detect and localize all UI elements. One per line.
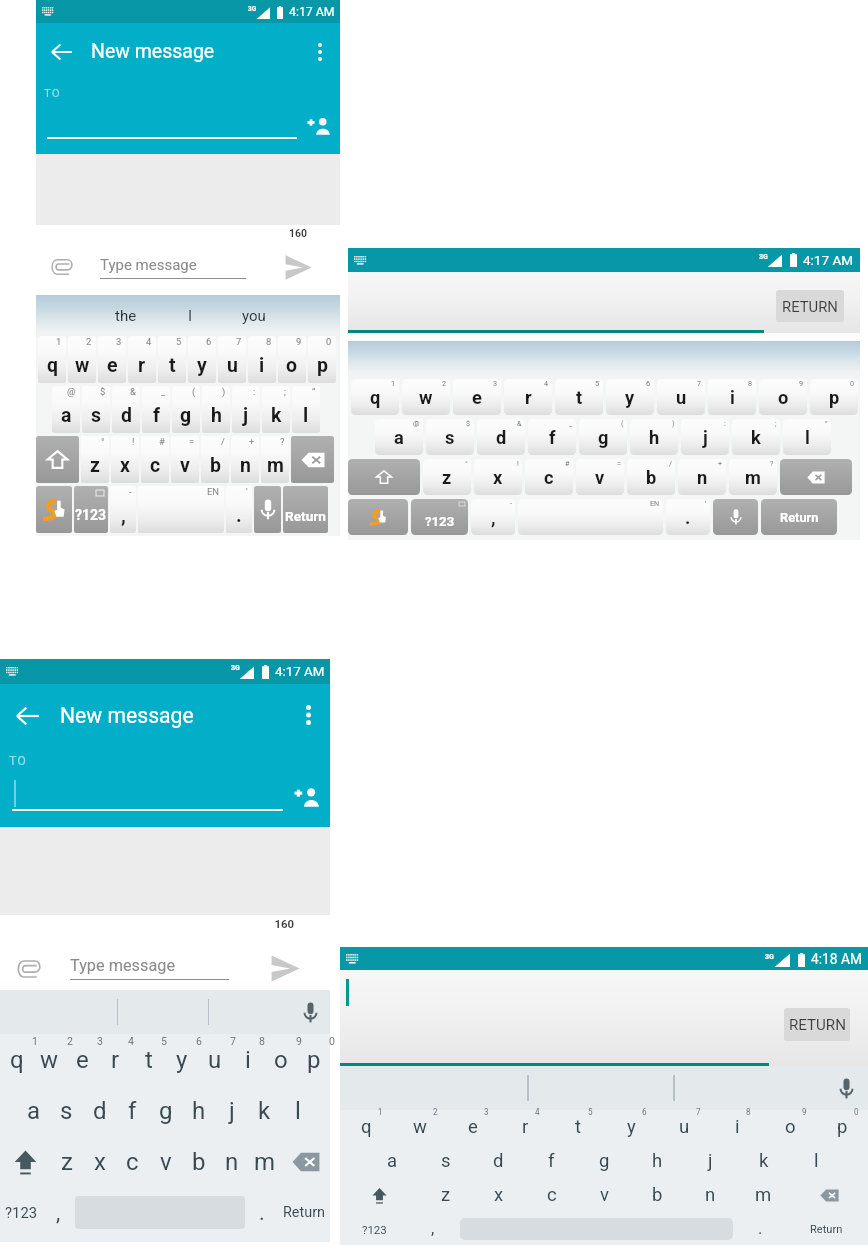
- button[interactable]: (: [172, 386, 200, 433]
- button[interactable]: y: [165, 1034, 198, 1085]
- button[interactable]: j: [684, 1144, 737, 1178]
- button[interactable]: ”: [783, 419, 831, 455]
- button[interactable]: .: [736, 1212, 784, 1245]
- button[interactable]: 2: [402, 379, 450, 415]
- button[interactable]: Voice input: [829, 1071, 863, 1105]
- button[interactable]: 2: [68, 336, 96, 383]
- button[interactable]: p: [817, 1110, 868, 1144]
- button[interactable]: w: [33, 1034, 66, 1085]
- button[interactable]: f: [116, 1085, 149, 1136]
- button[interactable]: a: [17, 1085, 50, 1136]
- button[interactable]: l: [281, 1085, 314, 1136]
- button[interactable]: g: [149, 1085, 182, 1136]
- button[interactable]: u: [658, 1110, 711, 1144]
- button[interactable]: .: [247, 1187, 277, 1238]
- button[interactable]: Voice input: [293, 995, 327, 1029]
- button[interactable]: EN: [518, 499, 663, 535]
- button[interactable]: ?123: [0, 1187, 43, 1238]
- button[interactable]: ,: [409, 1212, 457, 1245]
- button[interactable]: 1: [38, 336, 66, 383]
- button[interactable]: t: [552, 1110, 605, 1144]
- button[interactable]: $: [426, 419, 474, 455]
- button[interactable]: :: [232, 386, 260, 433]
- button[interactable]: 6: [188, 336, 216, 383]
- button[interactable]: Add contact: [291, 781, 321, 811]
- button[interactable]: +: [678, 459, 726, 495]
- button[interactable]: x: [83, 1136, 116, 1187]
- button[interactable]: ?: [261, 436, 289, 483]
- button[interactable]: ): [202, 386, 230, 433]
- button[interactable]: c: [525, 1178, 578, 1212]
- button[interactable]: s: [419, 1144, 472, 1178]
- button[interactable]: 8: [708, 379, 756, 415]
- button[interactable]: n: [215, 1136, 248, 1187]
- button[interactable]: (: [579, 419, 627, 455]
- button[interactable]: Backspace: [291, 436, 334, 483]
- button[interactable]: 5: [158, 336, 186, 383]
- button[interactable]: you: [222, 295, 286, 336]
- button[interactable]: 8: [248, 336, 276, 383]
- button[interactable]: m: [248, 1136, 281, 1187]
- button[interactable]: Swipe input: [348, 499, 408, 535]
- button[interactable]: v: [149, 1136, 182, 1187]
- button[interactable]: 1: [351, 379, 399, 415]
- button[interactable]: ”: [292, 386, 320, 433]
- button[interactable]: #: [141, 436, 169, 483]
- button[interactable]: 5: [555, 379, 603, 415]
- button[interactable]: RETURN: [784, 1008, 850, 1041]
- button[interactable]: t: [132, 1034, 165, 1085]
- button[interactable]: b: [631, 1178, 684, 1212]
- button[interactable]: ;: [262, 386, 290, 433]
- button[interactable]: Return: [761, 499, 837, 535]
- button[interactable]: ,: [43, 1187, 73, 1238]
- button[interactable]: e: [66, 1034, 99, 1085]
- button[interactable]: 3: [453, 379, 501, 415]
- button[interactable]: ?123: [411, 499, 468, 535]
- button[interactable]: _: [528, 419, 576, 455]
- button[interactable]: Shift: [0, 1136, 50, 1187]
- button[interactable]: Shift: [348, 459, 420, 495]
- button[interactable]: More options: [293, 700, 323, 730]
- button[interactable]: i: [231, 1034, 264, 1085]
- button[interactable]: g: [578, 1144, 631, 1178]
- button[interactable]: 7: [657, 379, 705, 415]
- button[interactable]: x: [472, 1178, 525, 1212]
- button[interactable]: !: [474, 459, 522, 495]
- button[interactable]: ?: [729, 459, 777, 495]
- button[interactable]: u: [198, 1034, 231, 1085]
- button[interactable]: ': [226, 486, 252, 533]
- button[interactable]: Voice input: [713, 499, 758, 535]
- button[interactable]: 0: [308, 336, 336, 383]
- button[interactable]: 3: [98, 336, 126, 383]
- button[interactable]: -: [110, 486, 136, 533]
- button[interactable]: 9: [759, 379, 807, 415]
- button[interactable]: h: [182, 1085, 215, 1136]
- button[interactable]: c: [116, 1136, 149, 1187]
- button[interactable]: Attach: [46, 251, 78, 283]
- button[interactable]: f: [525, 1144, 578, 1178]
- button[interactable]: Attach: [11, 951, 46, 986]
- button[interactable]: a: [366, 1144, 419, 1178]
- button[interactable]: -: [471, 499, 515, 535]
- button[interactable]: k: [248, 1085, 281, 1136]
- button[interactable]: 4: [504, 379, 552, 415]
- button[interactable]: _: [142, 386, 170, 433]
- button[interactable]: Return: [277, 1187, 330, 1238]
- button[interactable]: &: [112, 386, 140, 433]
- button[interactable]: Back: [45, 36, 77, 68]
- button[interactable]: Backspace: [790, 1178, 868, 1212]
- button[interactable]: m: [737, 1178, 790, 1212]
- button[interactable]: e: [446, 1110, 499, 1144]
- button[interactable]: Backspace: [780, 459, 852, 495]
- button[interactable]: $: [82, 386, 110, 433]
- button[interactable]: Swipe input: [36, 486, 72, 533]
- button[interactable]: &: [477, 419, 525, 455]
- button[interactable]: z: [50, 1136, 83, 1187]
- button[interactable]: Backspace: [281, 1136, 330, 1187]
- button[interactable]: #: [525, 459, 573, 495]
- button[interactable]: °: [423, 459, 471, 495]
- button[interactable]: i: [711, 1110, 764, 1144]
- button[interactable]: n: [684, 1178, 737, 1212]
- button[interactable]: b: [182, 1136, 215, 1187]
